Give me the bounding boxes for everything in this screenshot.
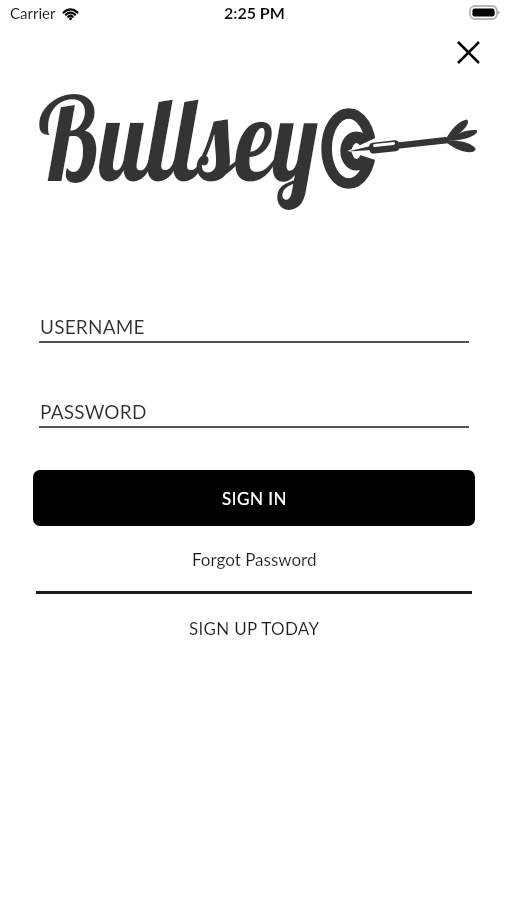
button[interactable]: Close <box>450 34 487 71</box>
staticText: Carrier <box>10 4 56 22</box>
button[interactable]: USERNAME <box>38 315 470 355</box>
staticText: SIGN IN <box>222 488 287 508</box>
staticText: PASSWORD <box>40 400 147 423</box>
staticText: SIGN UP TODAY <box>189 618 320 638</box>
button[interactable]: Forgot Password <box>33 536 475 582</box>
staticText: USERNAME <box>40 315 145 338</box>
button[interactable]: SIGN UP TODAY <box>33 606 475 650</box>
staticText: Bullsey <box>38 65 318 210</box>
staticText: Forgot Password <box>192 549 317 569</box>
staticText: 2:25 PM <box>224 3 285 22</box>
button[interactable]: PASSWORD <box>38 400 470 440</box>
button[interactable]: SIGN IN <box>33 470 475 526</box>
